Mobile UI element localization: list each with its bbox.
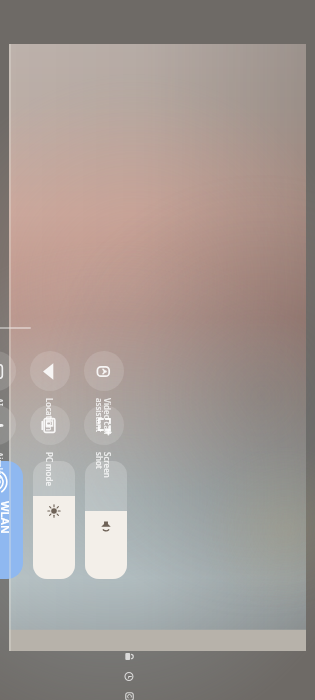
button[interactable]: Screen shot	[81, 405, 127, 494]
staticText: WLAN	[0, 501, 13, 534]
staticText: Location	[44, 398, 55, 440]
button[interactable]: Volume	[85, 461, 127, 579]
button[interactable]: Airplane mode	[0, 405, 19, 494]
staticText: Video call assistant	[94, 398, 113, 440]
button[interactable]: Video call assistant	[81, 351, 127, 440]
button[interactable]: Location	[27, 351, 73, 440]
staticText: Screen shot	[94, 452, 113, 494]
button[interactable]: PC mode	[27, 405, 73, 494]
button[interactable]: AI Transcript	[0, 351, 19, 440]
button[interactable]: WLAN	[0, 473, 23, 567]
staticText: AI Transcript	[0, 398, 5, 440]
button[interactable]: Brightness	[33, 461, 75, 579]
staticText: Airplane mode	[0, 452, 5, 494]
staticText: PC mode	[44, 452, 55, 494]
